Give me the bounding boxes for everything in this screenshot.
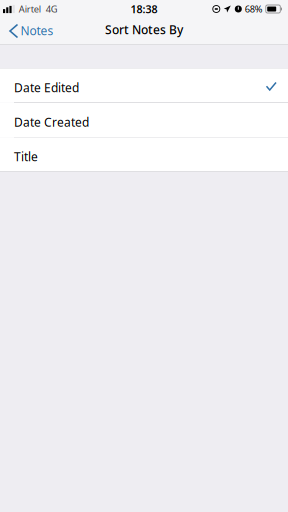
staticText: Date Edited: [14, 79, 79, 95]
button[interactable]: Notes: [0, 17, 53, 45]
button[interactable]: Date Created: [0, 103, 288, 137]
staticText: Title: [14, 148, 38, 164]
button[interactable]: Date Edited: [0, 68, 288, 102]
staticText: Sort Notes By: [105, 21, 183, 37]
staticText: Airtel: [19, 3, 41, 15]
staticText: 4G: [46, 3, 58, 15]
staticText: Notes: [20, 22, 53, 38]
staticText: 68%: [245, 3, 263, 15]
button[interactable]: Title: [0, 137, 288, 171]
staticText: 18:38: [130, 2, 157, 16]
staticText: Date Created: [14, 114, 89, 130]
